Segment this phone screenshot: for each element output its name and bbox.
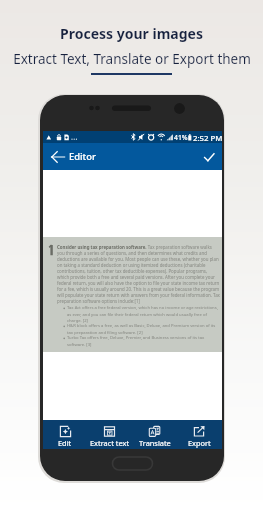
staticText: Tax Act offers a free federal version, w…	[67, 305, 220, 323]
staticText: 2:52 PM	[193, 133, 223, 144]
button[interactable]: Edit	[43, 420, 87, 449]
staticText: Process your images	[60, 24, 203, 43]
staticText: H&R block offers a free, as well as Basi…	[67, 323, 220, 335]
staticText: Extract text	[90, 438, 130, 448]
button[interactable]: Done	[198, 143, 222, 170]
staticText: 41%	[174, 133, 188, 142]
staticText: Editor	[69, 150, 96, 163]
staticText: Edit	[58, 438, 72, 448]
staticText: Consider using tax preparation software.…	[57, 244, 220, 304]
staticText: Turbo Tax offers free, Deluxe, Premier, …	[67, 335, 220, 347]
staticText: Extract Text, Translate or Export them	[13, 50, 251, 68]
button[interactable]: Extract text	[87, 420, 132, 449]
button[interactable]: Export	[177, 420, 222, 449]
staticText: Translate	[139, 438, 171, 448]
button[interactable]: Back	[46, 143, 70, 170]
staticText: Export	[188, 438, 211, 448]
button[interactable]: Translate	[132, 420, 177, 449]
